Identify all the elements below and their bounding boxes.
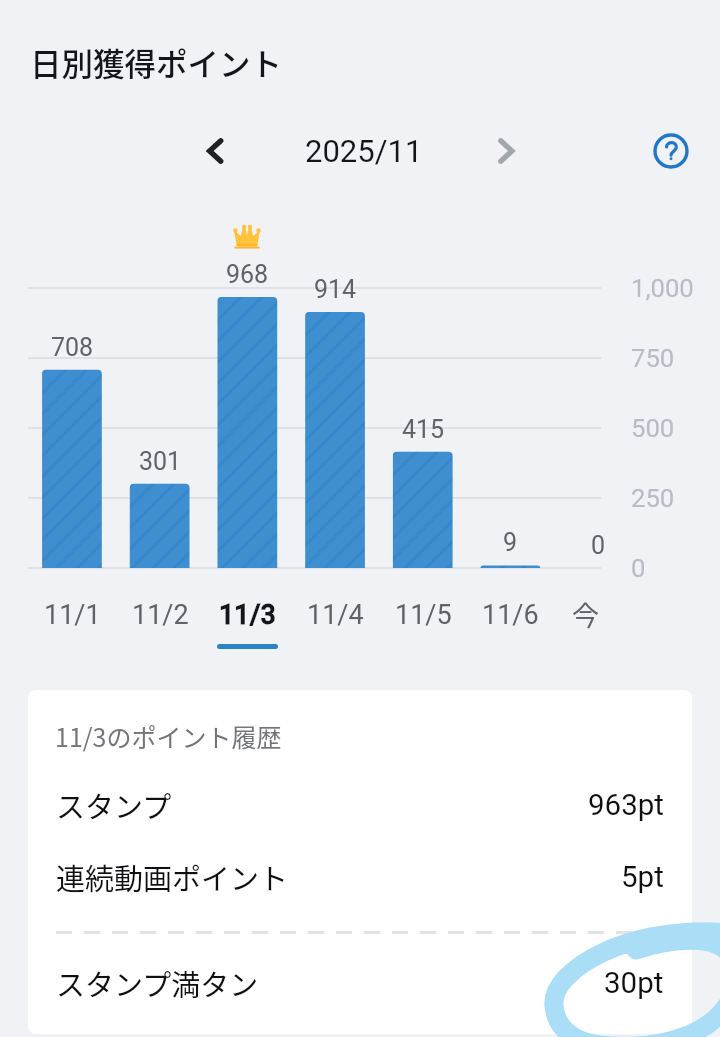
staticText: 963pt — [588, 788, 664, 823]
staticText: 11/1 — [44, 599, 101, 631]
staticText: 1,000 — [631, 273, 694, 303]
staticText: 9 — [465, 528, 555, 557]
button[interactable]: 11/3 — [204, 599, 290, 665]
staticText: 708 — [27, 333, 117, 362]
staticText: 0 — [553, 531, 643, 560]
staticText: 連続動画ポイント — [56, 856, 289, 898]
staticText: 750 — [631, 343, 675, 373]
button[interactable]: 11/2 — [117, 599, 203, 665]
staticText: 500 — [631, 413, 675, 443]
staticText: 968 — [202, 260, 292, 289]
staticText: 5pt — [621, 860, 664, 895]
staticText: 11/6 — [482, 599, 539, 631]
button[interactable]: 前の月 — [189, 127, 237, 175]
staticText: 2025/11 — [305, 133, 423, 169]
staticText: 914 — [290, 275, 380, 304]
button[interactable]: スタンプ — [28, 774, 692, 836]
button[interactable]: 今 — [542, 595, 628, 661]
staticText: 日別獲得ポイント — [30, 39, 283, 85]
button[interactable]: 連続動画ポイント — [28, 846, 692, 908]
staticText: スタンプ満タン — [56, 962, 259, 1004]
staticText: 301 — [115, 447, 205, 476]
staticText: 30pt — [604, 966, 664, 1001]
staticText: 11/3のポイント履歴 — [55, 718, 282, 754]
staticText: スタンプ — [56, 784, 172, 826]
staticText: 415 — [378, 415, 468, 444]
button[interactable]: スタンプ満タン — [28, 952, 692, 1014]
button[interactable]: 11/5 — [380, 599, 466, 665]
button[interactable]: ヘルプ — [647, 127, 695, 175]
button[interactable]: 次の月 — [483, 127, 531, 175]
button[interactable]: 11/6 — [467, 599, 553, 665]
staticText: 11/2 — [132, 599, 189, 631]
staticText: 250 — [631, 483, 675, 513]
staticText: 11/5 — [395, 599, 452, 631]
button[interactable]: 11/4 — [292, 599, 378, 665]
staticText: 11/4 — [307, 599, 364, 631]
staticText: 0 — [631, 553, 646, 583]
staticText: 今 — [572, 595, 599, 634]
staticText: 11/3 — [219, 599, 276, 631]
button[interactable]: 11/1 — [29, 599, 115, 665]
